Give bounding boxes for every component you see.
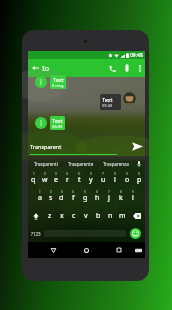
staticText: Transparent	[30, 143, 62, 150]
button[interactable]: Recents	[112, 243, 126, 257]
staticText: r	[66, 175, 69, 185]
staticText: q	[31, 175, 36, 185]
button[interactable]: Trasparenza	[98, 156, 133, 171]
staticText: 2	[44, 172, 46, 176]
button[interactable]: Voice input	[133, 156, 145, 171]
staticText: 09:48	[52, 124, 63, 129]
staticText: h	[95, 193, 100, 203]
staticText: l	[132, 193, 134, 203]
button[interactable]: a	[34, 189, 45, 207]
button[interactable]: c	[68, 207, 80, 225]
staticText: 5	[84, 190, 86, 194]
staticText: Trasparente	[68, 161, 94, 167]
button[interactable]: t	[73, 171, 85, 189]
staticText: i	[114, 175, 116, 185]
staticText: 5	[78, 172, 80, 176]
button[interactable]: l	[127, 189, 139, 207]
button[interactable]: v	[80, 207, 92, 225]
staticText: a	[38, 193, 42, 203]
staticText: 1	[33, 172, 35, 176]
staticText: y	[89, 175, 93, 185]
staticText: 3	[61, 190, 63, 194]
staticText: Io	[42, 63, 50, 73]
staticText: 6	[96, 190, 98, 194]
button[interactable]: Send	[130, 141, 144, 152]
staticText: j	[108, 193, 110, 203]
staticText: u	[101, 175, 106, 185]
staticText: Text	[52, 117, 63, 124]
staticText: o	[125, 175, 130, 185]
staticText: Trasparenza	[103, 161, 129, 167]
staticText: 7	[102, 172, 104, 176]
staticText: p	[137, 175, 142, 185]
staticText: s	[49, 193, 53, 203]
staticText: g	[83, 193, 88, 203]
staticText: 4	[66, 172, 68, 176]
button[interactable]: Backspace	[128, 207, 145, 225]
staticText: w	[42, 175, 48, 185]
staticText: 09:48	[130, 52, 143, 59]
button[interactable]: r	[61, 171, 73, 189]
staticText: n	[108, 211, 113, 221]
button[interactable]: j	[103, 189, 115, 207]
staticText: Text	[102, 96, 113, 103]
staticText: 9	[126, 172, 128, 176]
staticText: 09:48	[102, 103, 113, 108]
button[interactable]: Shift	[28, 207, 44, 225]
staticText: v	[84, 211, 88, 221]
staticText: x	[60, 211, 64, 221]
button[interactable]: q	[28, 171, 39, 189]
button[interactable]: e	[50, 171, 61, 189]
button[interactable]: z	[44, 207, 56, 225]
button[interactable]: ?123	[28, 225, 44, 242]
staticText: b	[96, 211, 101, 221]
button[interactable]: Back	[46, 243, 60, 257]
staticText: c	[72, 211, 76, 221]
button[interactable]: x	[56, 207, 68, 225]
button[interactable]: w	[39, 171, 50, 189]
staticText: 8 msg	[52, 83, 64, 88]
staticText: 7	[108, 190, 110, 194]
button[interactable]: h	[91, 189, 103, 207]
button[interactable]: b	[92, 207, 104, 225]
button[interactable]: Trasparenti	[28, 156, 63, 171]
staticText: 0	[138, 172, 140, 176]
button[interactable]: Hide keyboard	[135, 248, 142, 253]
button[interactable]: u	[97, 171, 109, 189]
button[interactable]: Call	[104, 59, 120, 77]
staticText: 1	[39, 190, 41, 194]
staticText: 4	[72, 190, 74, 194]
staticText: t	[78, 175, 81, 185]
button[interactable]: Home	[79, 243, 93, 257]
staticText: 8	[114, 172, 116, 176]
staticText: 6	[90, 172, 92, 176]
button[interactable]: s	[45, 189, 56, 207]
button[interactable]: o	[121, 171, 133, 189]
button[interactable]: More options	[134, 59, 145, 77]
button[interactable]: p	[133, 171, 145, 189]
button[interactable]: Trasparente	[63, 156, 98, 171]
staticText: k	[119, 193, 123, 203]
staticText: Trasparenti	[34, 161, 58, 167]
button[interactable]: Emoji	[126, 225, 145, 242]
staticText: Text	[53, 76, 64, 83]
button[interactable]: m	[116, 207, 128, 225]
button[interactable]: k	[115, 189, 127, 207]
staticText: ?123	[31, 231, 41, 237]
staticText: z	[48, 211, 52, 221]
staticText: e	[54, 175, 58, 185]
staticText: f	[72, 193, 75, 203]
button[interactable]: d	[56, 189, 67, 207]
button[interactable]: y	[85, 171, 97, 189]
button[interactable]: f	[67, 189, 79, 207]
staticText: 8	[120, 190, 122, 194]
button[interactable]: n	[104, 207, 116, 225]
button[interactable]: Attach	[120, 59, 134, 77]
button[interactable]: g	[79, 189, 91, 207]
staticText: 3	[55, 172, 57, 176]
staticText: d	[59, 193, 64, 203]
staticText: 2	[50, 190, 52, 194]
button[interactable]: i	[109, 171, 121, 189]
button[interactable]: Back	[28, 59, 42, 77]
